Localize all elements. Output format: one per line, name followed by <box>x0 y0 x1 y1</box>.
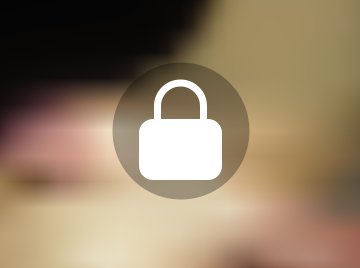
button[interactable]: Unlock <box>0 0 360 268</box>
